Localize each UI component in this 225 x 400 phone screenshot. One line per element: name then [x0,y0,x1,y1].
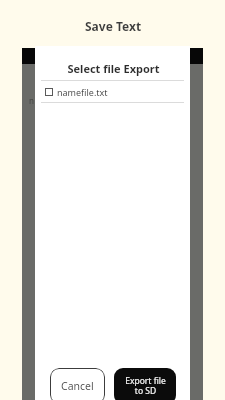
staticText: Cancel [61,379,94,393]
staticText: namefile.txt [57,86,108,98]
button[interactable]: namefile.txt [35,81,190,102]
button[interactable]: Export file to SD [114,368,176,400]
staticText: Export file to SD [125,375,166,397]
staticText: Select file Export [36,61,191,76]
staticText: Save Text [85,18,142,34]
staticText: n [29,95,34,106]
button[interactable]: Cancel [50,368,105,400]
